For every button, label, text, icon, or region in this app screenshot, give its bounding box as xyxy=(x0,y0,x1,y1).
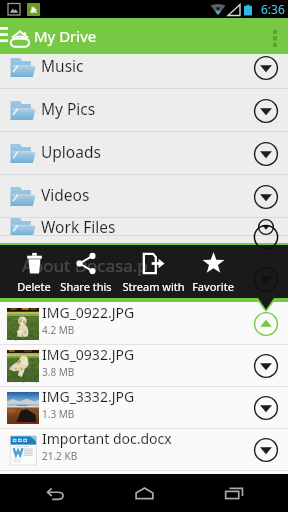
staticText: 4.2 MB xyxy=(42,323,75,337)
staticText: Music xyxy=(41,55,84,76)
button[interactable]: Back xyxy=(20,474,90,512)
staticText: Favorite xyxy=(192,279,234,294)
button[interactable]: Expand Work Files xyxy=(244,218,288,236)
staticText: Important doc.docx xyxy=(42,429,172,448)
button[interactable]: Uploads xyxy=(0,132,288,175)
staticText: 21.2 KB xyxy=(42,449,78,463)
button[interactable]: Important doc.docx xyxy=(0,429,288,471)
staticText: IMG_0922.JPG xyxy=(42,303,135,322)
staticText: My Drive xyxy=(34,26,97,46)
staticText: Work Files xyxy=(41,216,116,234)
button[interactable]: Expand My Pics xyxy=(244,89,288,132)
button[interactable]: Expand IMG_0932.JPG xyxy=(244,345,288,387)
button[interactable]: Share this xyxy=(55,245,117,298)
button[interactable]: Delete xyxy=(3,245,65,298)
staticText: Delete xyxy=(17,279,51,294)
staticText: Stream with xyxy=(122,279,185,294)
staticText: Uploads xyxy=(41,141,101,162)
button[interactable]: Expand IMG_0922.JPG xyxy=(244,303,288,345)
button[interactable]: Open navigation drawer xyxy=(0,18,14,54)
button[interactable]: More options xyxy=(262,18,288,54)
button[interactable]: Work Files xyxy=(0,218,288,236)
staticText: Share this xyxy=(60,279,112,294)
staticText: 3.8 MB xyxy=(42,365,75,379)
button[interactable]: Favorite xyxy=(182,245,244,298)
button[interactable]: IMG_0932.JPG xyxy=(0,345,288,387)
button[interactable]: Expand Important doc.docx xyxy=(244,429,288,471)
staticText: About Docasa.p xyxy=(22,254,148,277)
button[interactable]: Expand Videos xyxy=(244,175,288,218)
button[interactable]: Expand Uploads xyxy=(244,132,288,175)
button[interactable]: Expand Music xyxy=(244,46,288,89)
staticText: 6:36 xyxy=(261,1,285,17)
button[interactable]: IMG_3332.JPG xyxy=(0,387,288,429)
button[interactable]: Expand IMG_3332.JPG xyxy=(244,387,288,429)
staticText: My Pics xyxy=(41,98,96,119)
staticText: IMG_0932.JPG xyxy=(42,345,135,364)
button[interactable]: My Pics xyxy=(0,89,288,132)
button[interactable]: Videos xyxy=(0,175,288,218)
button[interactable]: Home xyxy=(109,474,179,512)
button[interactable]: Music xyxy=(0,46,288,89)
staticText: 1.3 MB xyxy=(42,407,75,421)
button[interactable]: Stream with xyxy=(118,245,188,298)
staticText: Videos xyxy=(41,184,90,205)
button[interactable]: Recent apps xyxy=(199,474,269,512)
staticText: IMG_3332.JPG xyxy=(42,387,135,406)
button[interactable]: IMG_0922.JPG xyxy=(0,303,288,345)
